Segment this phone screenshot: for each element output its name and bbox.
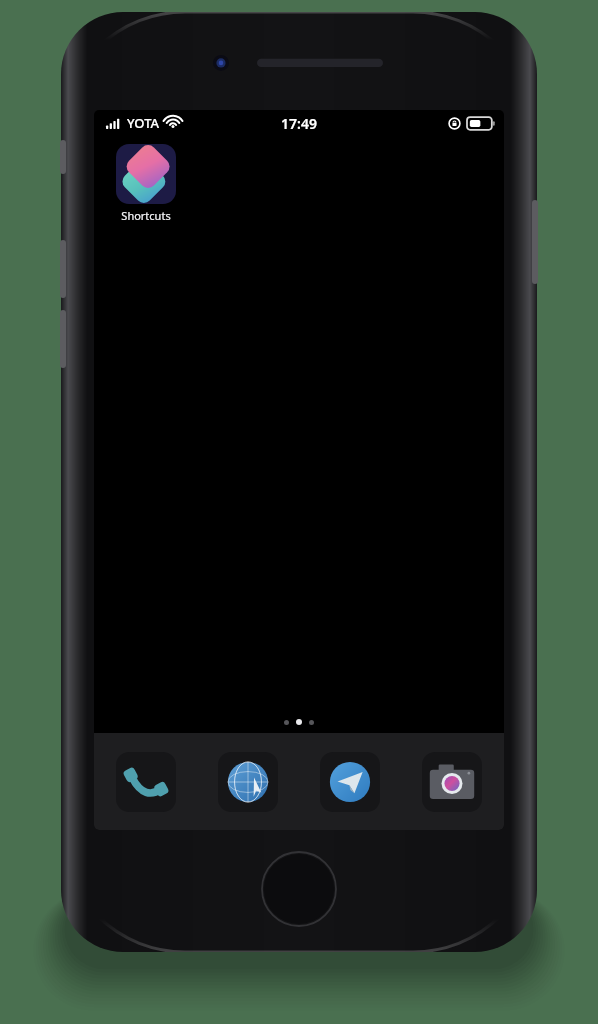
staticText: YOTA [127, 114, 160, 132]
staticText: Shortcuts [121, 208, 171, 223]
button[interactable]: Phone [116, 752, 176, 812]
button[interactable]: Camera [422, 752, 482, 812]
button[interactable]: Shortcuts [116, 144, 176, 223]
staticText: 17:49 [281, 114, 317, 133]
button[interactable]: Home [260, 850, 338, 928]
button[interactable]: Telegram [320, 752, 380, 812]
button[interactable]: Safari [218, 752, 278, 812]
